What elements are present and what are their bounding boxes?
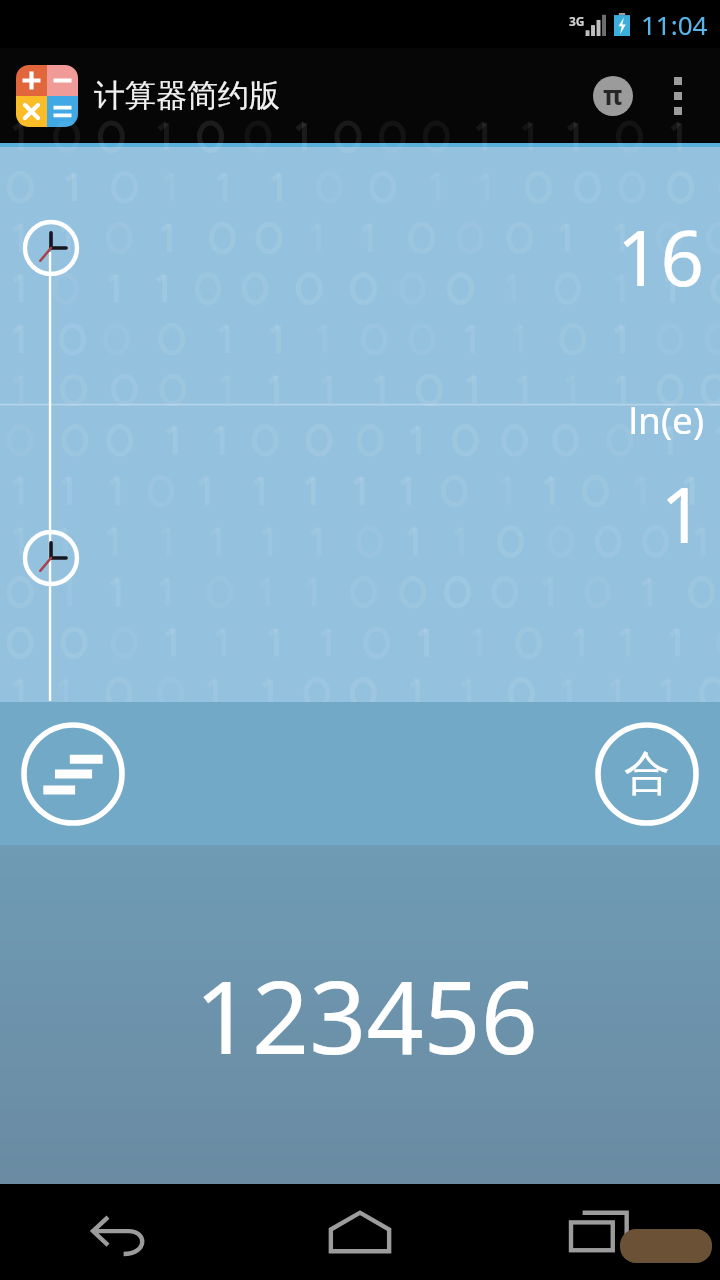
button[interactable]: Pi constant [578, 61, 648, 131]
button[interactable]: Entry timestamp [22, 219, 80, 277]
button[interactable]: Entry timestamp [22, 529, 80, 587]
staticText: 合 [624, 745, 670, 803]
staticText: 11:04 [641, 7, 708, 42]
staticText: π [603, 77, 623, 112]
button[interactable]: Calculator icon [16, 65, 78, 127]
button[interactable]: Recent apps [480, 1184, 720, 1280]
staticText: ln(e) [628, 394, 704, 444]
button[interactable]: 16 [617, 205, 704, 309]
staticText: 3G [569, 13, 585, 29]
button[interactable]: More options [648, 66, 708, 126]
staticText: 计算器简约版 [94, 76, 280, 115]
button[interactable]: Combine [594, 721, 700, 827]
button[interactable]: 123456 [0, 845, 720, 1184]
button[interactable]: 1 [660, 462, 704, 566]
button[interactable]: Home [240, 1184, 480, 1280]
button[interactable]: Back [0, 1184, 240, 1280]
button[interactable]: History list [20, 721, 126, 827]
staticText: 123456 [194, 947, 538, 1083]
